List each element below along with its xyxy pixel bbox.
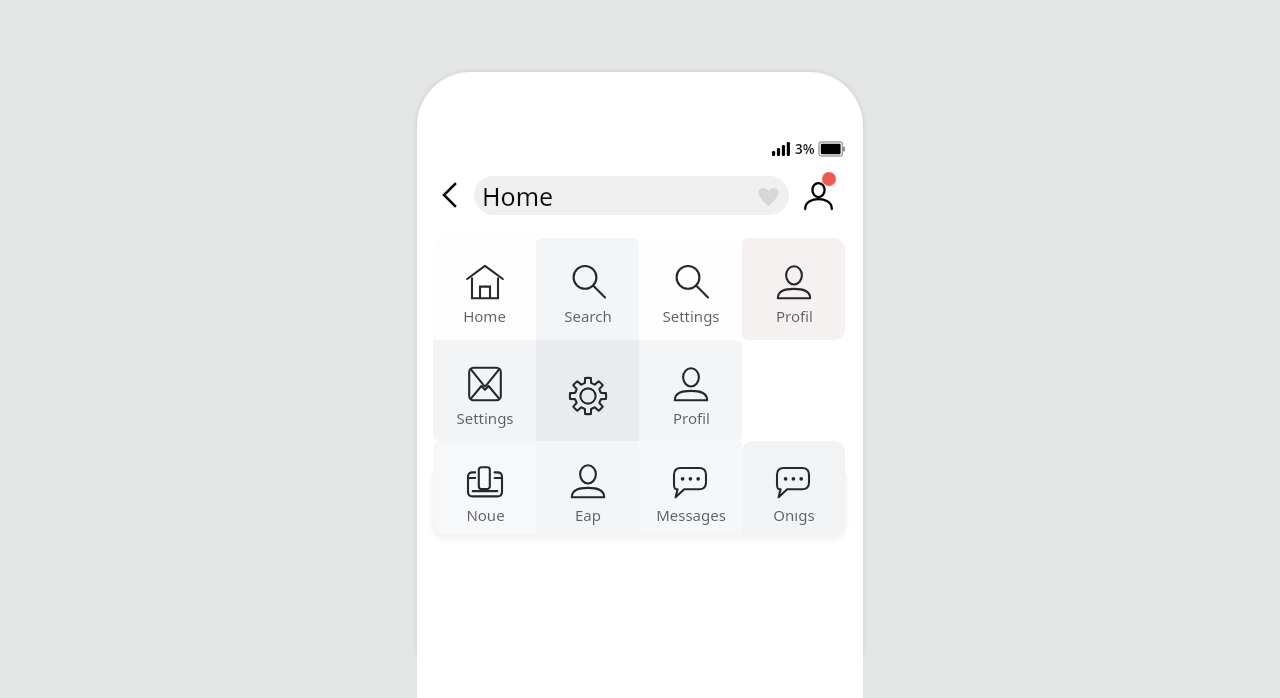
staticText: Messages <box>656 505 726 525</box>
button[interactable]: Back <box>429 175 469 215</box>
staticText: Home <box>463 306 506 326</box>
staticText: Settings <box>456 408 514 428</box>
button[interactable]: Onıgs <box>742 441 845 535</box>
button[interactable]: Settings <box>639 238 742 340</box>
button[interactable]: Messages <box>639 441 742 535</box>
staticText: Home <box>482 179 554 213</box>
button[interactable]: Noue <box>433 441 536 535</box>
button[interactable]: Home <box>474 176 789 215</box>
button[interactable]: Account <box>800 171 846 217</box>
staticText: Eap <box>575 505 601 525</box>
button[interactable]: Eap <box>536 441 639 535</box>
staticText: Noue <box>466 505 505 525</box>
button[interactable]: Search <box>536 238 639 340</box>
staticText: Onıgs <box>773 505 815 525</box>
button[interactable]: Home <box>433 238 536 340</box>
button[interactable]: Profil <box>639 340 742 441</box>
staticText: Search <box>564 306 612 326</box>
staticText: Settings <box>662 306 720 326</box>
staticText: Profil <box>776 306 813 326</box>
staticText: 3% <box>795 140 815 158</box>
button[interactable]: Settings <box>536 340 639 441</box>
button[interactable]: Settings <box>433 340 536 441</box>
button[interactable]: Profil <box>742 238 845 340</box>
staticText: Profil <box>673 408 710 428</box>
